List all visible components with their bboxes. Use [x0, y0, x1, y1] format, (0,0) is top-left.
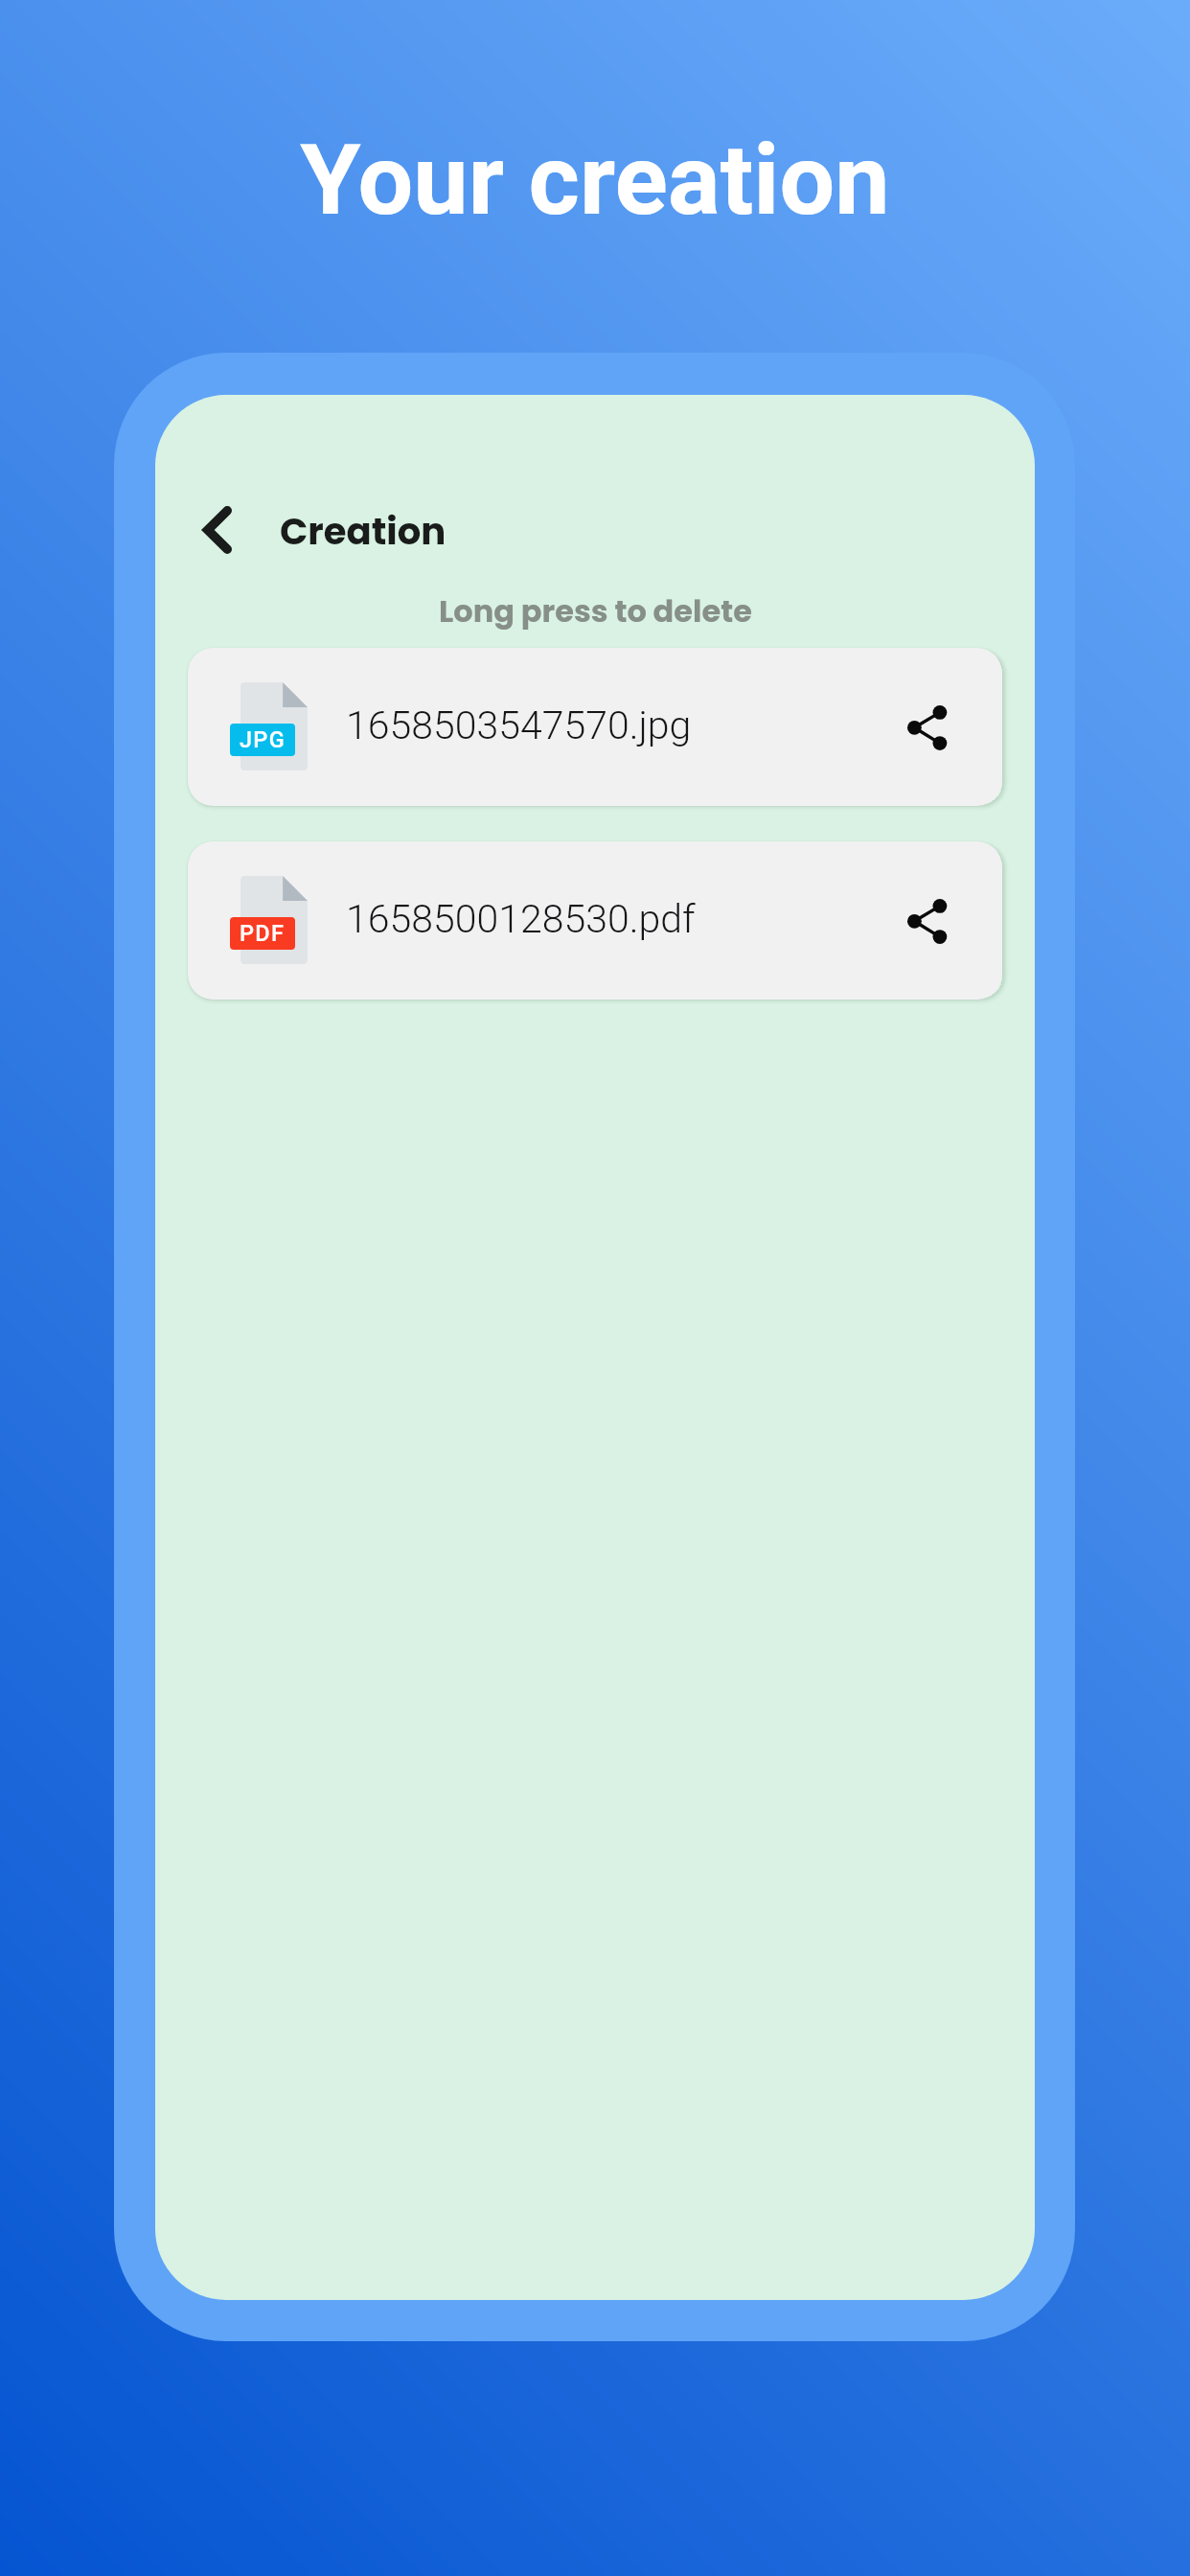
staticText: Creation	[280, 506, 446, 558]
button[interactable]: Share	[883, 877, 972, 965]
button[interactable]: PDF	[188, 841, 1002, 1000]
staticText: PDF	[240, 920, 286, 947]
staticText: Long press to delete	[439, 589, 752, 632]
button[interactable]: Back	[181, 497, 254, 563]
staticText: Your creation	[300, 123, 890, 238]
button[interactable]: JPG	[188, 648, 1002, 806]
staticText: 1658500128530.pdf	[346, 896, 696, 942]
staticText: 1658503547570.jpg	[346, 702, 692, 748]
button[interactable]: Share	[883, 683, 972, 771]
staticText: JPG	[240, 726, 286, 753]
